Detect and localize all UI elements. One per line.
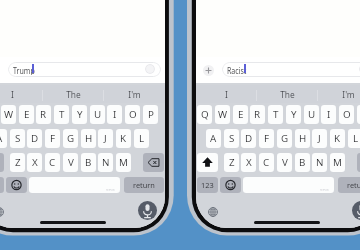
staticText: return bbox=[133, 180, 155, 190]
button[interactable]: H bbox=[295, 129, 310, 148]
staticText: J bbox=[318, 132, 321, 145]
button[interactable]: X bbox=[27, 153, 42, 172]
staticText: E bbox=[24, 108, 30, 121]
staticText: D bbox=[245, 132, 253, 145]
staticText: The bbox=[66, 89, 81, 100]
button[interactable]: J bbox=[98, 129, 113, 148]
button[interactable]: P bbox=[357, 105, 360, 124]
button[interactable]: O bbox=[125, 105, 140, 124]
button[interactable]: S bbox=[224, 129, 239, 148]
button[interactable]: L bbox=[134, 129, 149, 148]
staticText: R bbox=[40, 108, 47, 121]
button[interactable]: N bbox=[312, 153, 327, 172]
button[interactable]: C bbox=[45, 153, 60, 172]
button[interactable] bbox=[222, 62, 360, 77]
button[interactable]: F bbox=[259, 129, 274, 148]
button[interactable]: The bbox=[43, 85, 104, 103]
button[interactable]: I bbox=[107, 105, 122, 124]
staticText: I'm bbox=[128, 89, 141, 100]
button[interactable]: E bbox=[233, 105, 248, 124]
button[interactable]: J bbox=[312, 129, 327, 148]
staticText: L bbox=[139, 132, 145, 145]
button[interactable]: Y bbox=[72, 105, 87, 124]
button[interactable]: V bbox=[277, 153, 292, 172]
staticText: G bbox=[67, 132, 75, 145]
button[interactable]: Emoji bbox=[6, 177, 27, 193]
button[interactable]: M bbox=[330, 153, 345, 172]
button[interactable]: Send bbox=[145, 64, 155, 74]
button[interactable]: T bbox=[268, 105, 283, 124]
button[interactable] bbox=[29, 177, 120, 193]
button[interactable]: G bbox=[277, 129, 292, 148]
button[interactable]: A bbox=[0, 129, 7, 148]
staticText: Y bbox=[291, 108, 297, 121]
button[interactable]: T bbox=[54, 105, 69, 124]
button[interactable]: K bbox=[116, 129, 131, 148]
button[interactable]: Dictate bbox=[352, 201, 360, 220]
button[interactable]: I'm bbox=[318, 85, 360, 103]
button[interactable]: I'm bbox=[104, 85, 165, 103]
button[interactable]: Send bbox=[359, 64, 360, 74]
staticText: X bbox=[32, 156, 38, 169]
staticText: F bbox=[50, 132, 56, 145]
staticText: I bbox=[327, 108, 331, 121]
button[interactable]: Add attachment bbox=[203, 65, 214, 76]
button[interactable]: I bbox=[196, 85, 257, 103]
button[interactable]: Switch keyboard bbox=[0, 207, 4, 217]
button[interactable]: return bbox=[124, 177, 164, 193]
button[interactable]: 123 bbox=[0, 177, 4, 193]
button[interactable]: L bbox=[348, 129, 360, 148]
button[interactable]: U bbox=[304, 105, 319, 124]
button[interactable]: C bbox=[259, 153, 274, 172]
button[interactable]: 123 bbox=[197, 177, 218, 193]
button[interactable]: Emoji bbox=[220, 177, 241, 193]
button[interactable]: K bbox=[330, 129, 345, 148]
button[interactable]: Switch keyboard bbox=[208, 207, 218, 217]
button[interactable]: O bbox=[339, 105, 354, 124]
button[interactable] bbox=[243, 177, 334, 193]
button[interactable]: R bbox=[250, 105, 265, 124]
button[interactable]: W bbox=[1, 105, 16, 124]
button[interactable]: P bbox=[143, 105, 158, 124]
button[interactable]: U bbox=[90, 105, 105, 124]
staticText: O bbox=[129, 108, 137, 121]
staticText: C bbox=[49, 156, 56, 169]
button[interactable]: Backspace bbox=[357, 153, 360, 172]
button[interactable] bbox=[8, 62, 161, 77]
button[interactable]: D bbox=[241, 129, 256, 148]
button[interactable]: Z bbox=[224, 153, 239, 172]
button[interactable]: F bbox=[45, 129, 60, 148]
button[interactable]: B bbox=[81, 153, 96, 172]
staticText: M bbox=[333, 156, 342, 169]
button[interactable]: V bbox=[63, 153, 78, 172]
staticText: 123 bbox=[201, 180, 214, 190]
button[interactable]: A bbox=[206, 129, 221, 148]
button[interactable]: R bbox=[36, 105, 51, 124]
button[interactable]: Shift bbox=[197, 153, 218, 172]
button[interactable]: Shift bbox=[0, 153, 4, 172]
button[interactable]: return bbox=[338, 177, 360, 193]
button[interactable]: The bbox=[257, 85, 318, 103]
button[interactable]: N bbox=[98, 153, 113, 172]
button[interactable]: Y bbox=[286, 105, 301, 124]
button[interactable]: I bbox=[0, 85, 43, 103]
button[interactable]: I bbox=[321, 105, 336, 124]
staticText: space bbox=[320, 186, 330, 191]
button[interactable]: Z bbox=[10, 153, 25, 172]
button[interactable]: X bbox=[241, 153, 256, 172]
button[interactable]: M bbox=[116, 153, 131, 172]
button[interactable]: Dictate bbox=[138, 201, 157, 220]
button[interactable]: Q bbox=[197, 105, 212, 124]
button[interactable]: D bbox=[27, 129, 42, 148]
button[interactable]: S bbox=[10, 129, 25, 148]
button[interactable]: B bbox=[295, 153, 310, 172]
staticText: R bbox=[254, 108, 261, 121]
button[interactable]: Backspace bbox=[143, 153, 164, 172]
button[interactable]: E bbox=[19, 105, 34, 124]
staticText: V bbox=[282, 156, 288, 169]
button[interactable]: H bbox=[81, 129, 96, 148]
staticText: U bbox=[94, 108, 102, 121]
button[interactable]: G bbox=[63, 129, 78, 148]
staticText: T bbox=[59, 108, 65, 121]
button[interactable]: W bbox=[215, 105, 230, 124]
